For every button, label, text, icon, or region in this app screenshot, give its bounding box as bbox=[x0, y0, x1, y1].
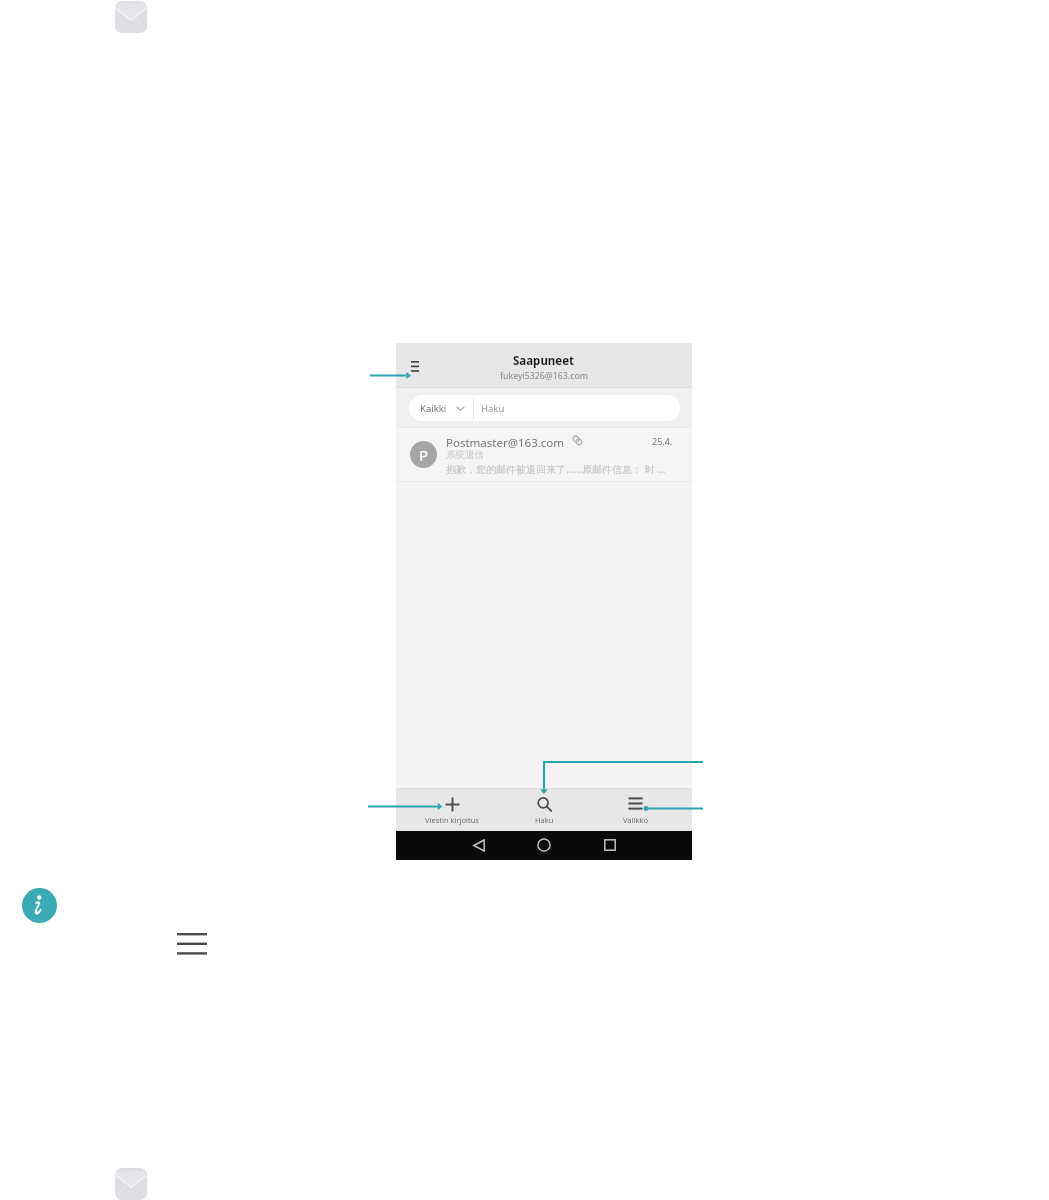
button[interactable]: Mail bbox=[115, 1, 147, 33]
staticText: Saapuneet bbox=[513, 353, 575, 369]
staticText: P bbox=[419, 445, 429, 465]
button[interactable]: Menu bbox=[401, 352, 425, 374]
staticText: 系统退信 bbox=[446, 449, 484, 461]
staticText: Kaikki bbox=[420, 402, 447, 415]
staticText: 25.4. bbox=[652, 435, 673, 447]
button[interactable]: Mail bbox=[115, 1168, 147, 1200]
button[interactable]: Haku bbox=[498, 789, 590, 831]
button[interactable]: Kaikki bbox=[409, 395, 680, 421]
button[interactable]: Valikko bbox=[589, 789, 681, 831]
button[interactable]: Viestin kirjoitus bbox=[406, 789, 498, 831]
staticText: fukeyi5326@163.com bbox=[500, 370, 588, 382]
button[interactable]: Home bbox=[533, 834, 555, 856]
button[interactable]: Info bbox=[22, 888, 57, 923]
button[interactable]: Recents bbox=[599, 834, 621, 856]
button[interactable]: Back bbox=[468, 834, 490, 856]
staticText: 抱歉，您的邮件被退回来了......原邮件信息： 时 ... bbox=[446, 462, 666, 476]
staticText: Postmaster@163.com bbox=[446, 435, 565, 451]
staticText: Haku bbox=[535, 815, 554, 825]
staticText: Haku bbox=[481, 402, 505, 415]
staticText: Valikko bbox=[623, 815, 648, 825]
button[interactable]: P bbox=[396, 427, 692, 482]
button[interactable]: Menu bbox=[176, 932, 210, 958]
staticText: Viestin kirjoitus bbox=[425, 815, 479, 825]
